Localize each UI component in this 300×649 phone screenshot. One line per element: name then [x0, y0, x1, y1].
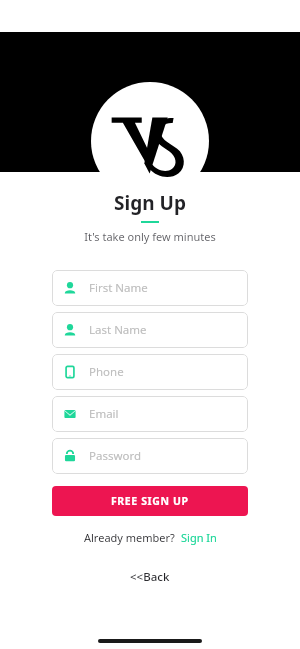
button[interactable]: Password — [52, 438, 248, 474]
staticText: It's take only few minutes — [84, 229, 216, 244]
button[interactable]: First Name — [52, 270, 248, 306]
staticText: FREE SIGN UP — [111, 494, 189, 508]
staticText: Sign Up — [114, 190, 186, 216]
button[interactable]: <<Back — [120, 565, 180, 589]
staticText: <<Back — [130, 569, 170, 585]
staticText: Password — [89, 448, 142, 464]
button[interactable]: Phone — [52, 354, 248, 390]
button[interactable]: FREE SIGN UP — [52, 486, 248, 516]
staticText: Phone — [89, 364, 124, 380]
button[interactable]: Last Name — [52, 312, 248, 348]
staticText: Email — [89, 406, 119, 422]
other: Home indicator — [98, 639, 202, 643]
staticText: Sign In — [181, 530, 217, 545]
button[interactable]: Sign In — [181, 530, 217, 545]
staticText: Already member? — [84, 530, 175, 545]
staticText: First Name — [89, 280, 148, 296]
staticText: Last Name — [89, 322, 147, 338]
button[interactable]: Email — [52, 396, 248, 432]
